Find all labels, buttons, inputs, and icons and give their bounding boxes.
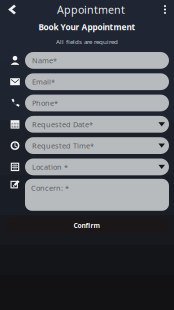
button[interactable]: Phone* [0, 95, 174, 111]
button[interactable]: Back [2, 0, 22, 19]
staticText: Location * [32, 162, 68, 172]
button[interactable]: Requested Time* [0, 137, 174, 154]
staticText: Phone* [32, 98, 58, 108]
button[interactable]: Requested Date* [0, 116, 174, 133]
staticText: Requested Date* [32, 119, 93, 129]
button[interactable]: More options [158, 0, 172, 19]
staticText: Concern: * [31, 183, 69, 193]
staticText: Confirm [73, 221, 100, 230]
staticText: Name* [32, 55, 57, 65]
staticText: Appointment [57, 2, 125, 17]
button[interactable]: Location * [0, 158, 174, 175]
staticText: Book Your Appointment [38, 21, 135, 33]
button[interactable]: Concern: * [0, 179, 174, 211]
button[interactable]: Name* [0, 52, 174, 69]
button[interactable]: Email* [0, 73, 174, 90]
staticText: Requested Time* [32, 141, 94, 151]
staticText: All fields are required [56, 37, 118, 46]
button[interactable]: Confirm [0, 217, 174, 234]
staticText: Email* [32, 77, 55, 87]
